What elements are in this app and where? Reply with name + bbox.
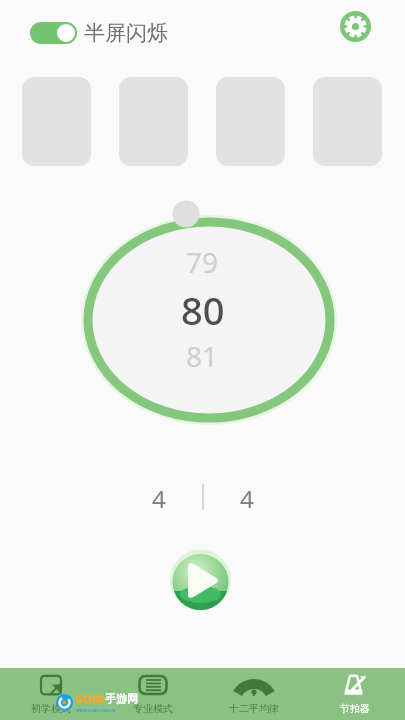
staticText: 4 <box>152 482 166 512</box>
staticText: 初学模式 <box>31 702 71 715</box>
staticText: GO88 <box>75 691 105 706</box>
staticText: WWW.GO88.COM.CN <box>76 708 115 713</box>
staticText: 半屏闪烁 <box>84 20 168 46</box>
staticText: 节拍器 <box>340 702 370 715</box>
staticText: 79 <box>186 243 219 281</box>
staticText: 手游网 <box>105 692 138 706</box>
staticText: 十二平均律 <box>229 702 279 715</box>
staticText: 4 <box>240 482 254 512</box>
staticText: 80 <box>181 284 225 328</box>
staticText: 专业模式 <box>133 702 173 715</box>
staticText: 81 <box>186 337 219 375</box>
